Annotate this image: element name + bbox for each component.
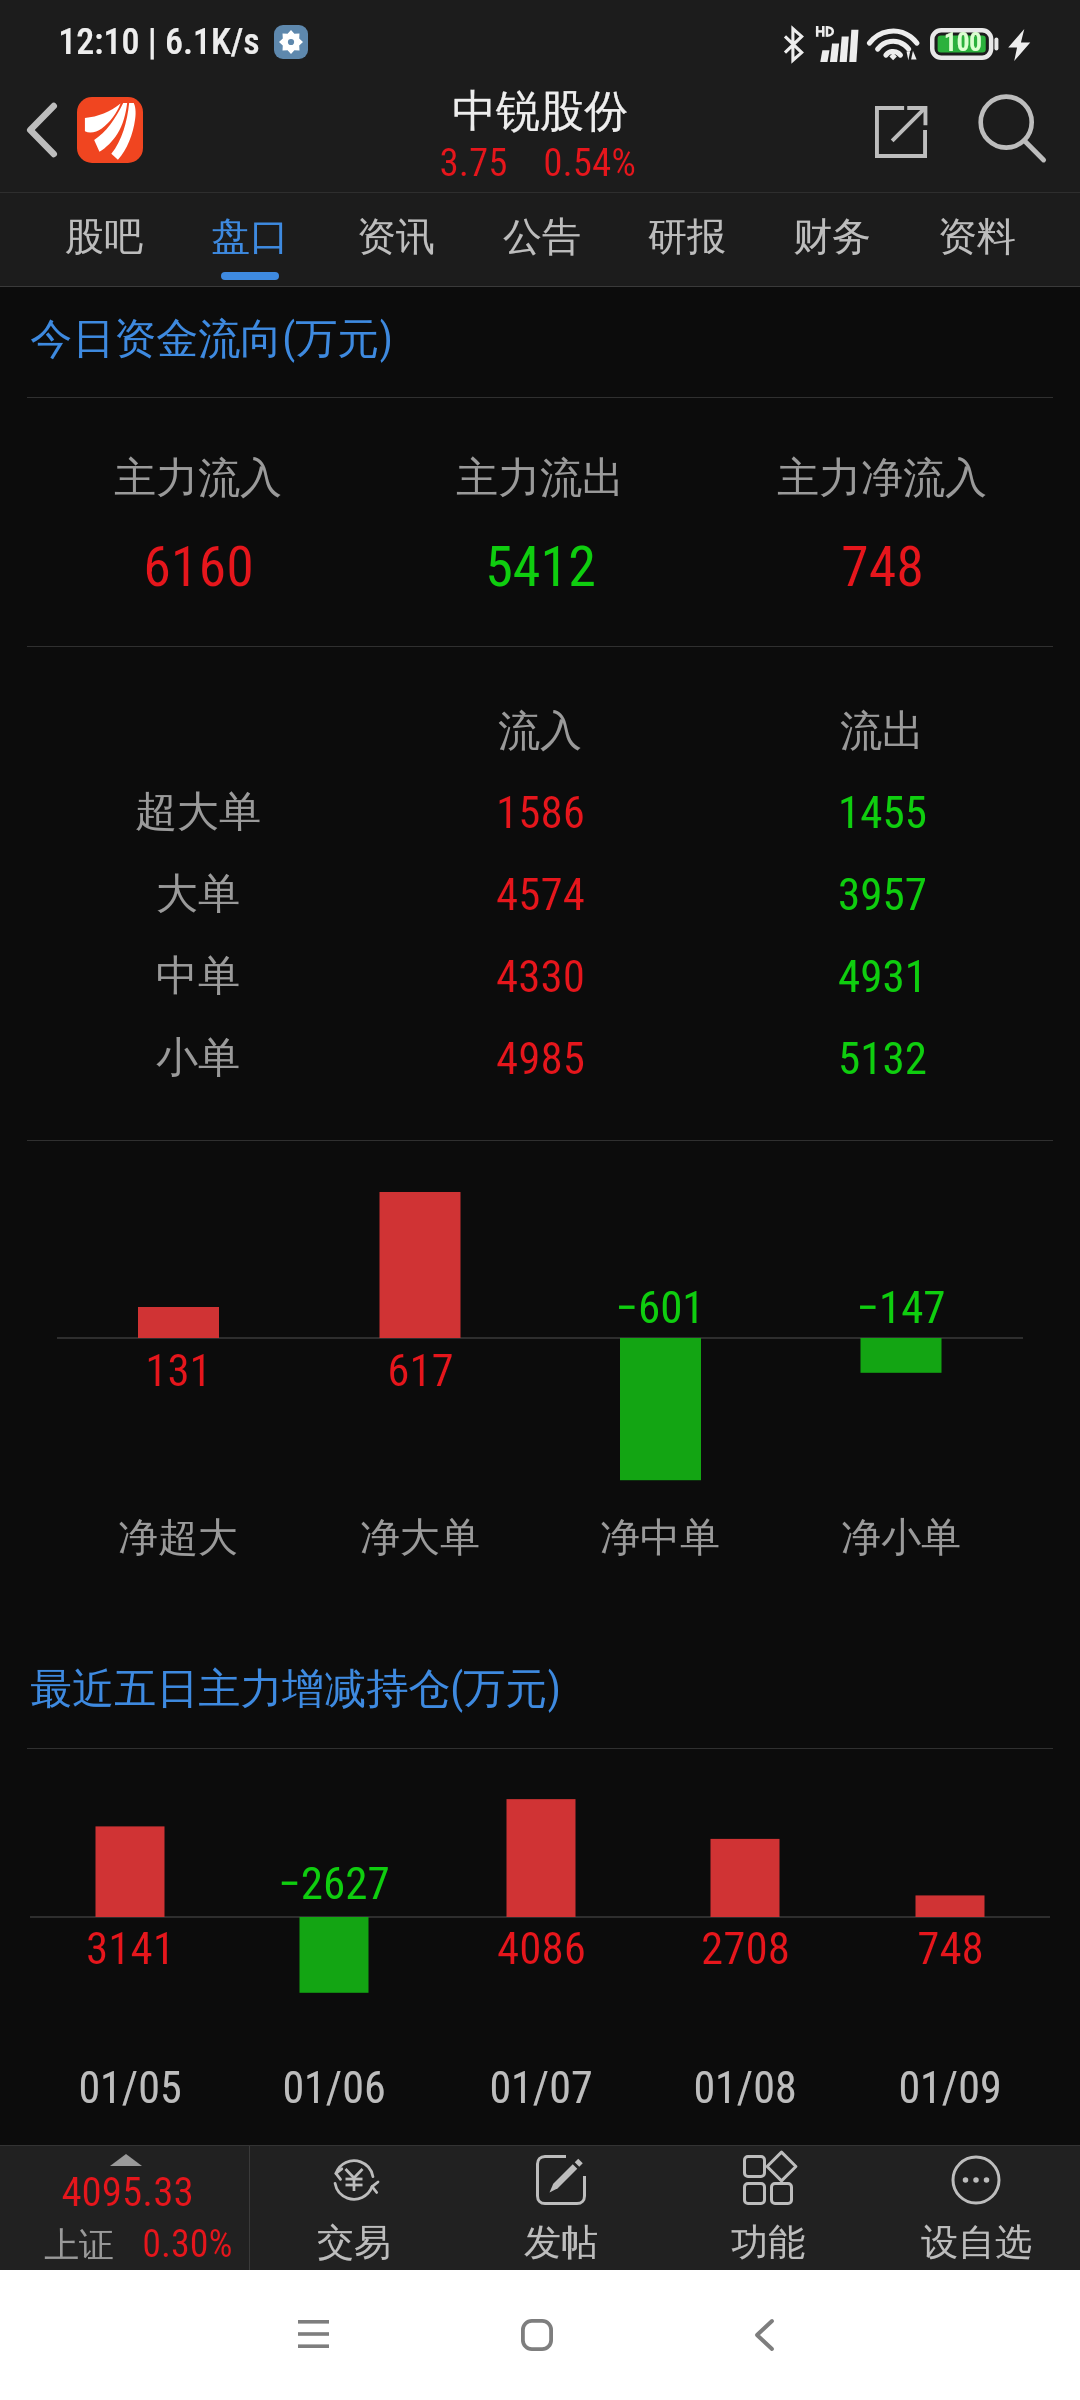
staticText: 流入: [498, 705, 582, 758]
staticText: −2627: [278, 1857, 390, 1910]
staticText: 净超大: [118, 1512, 238, 1562]
staticText: −147: [856, 1281, 946, 1334]
button[interactable]: Eastmoney: [77, 97, 143, 163]
staticText: 小单: [156, 1032, 240, 1085]
staticText: 超大单: [135, 786, 261, 839]
staticText: 净中单: [600, 1512, 720, 1562]
staticText: 交易: [317, 2219, 391, 2266]
button[interactable]: 发帖: [457, 2146, 664, 2270]
staticText: 股吧: [65, 212, 143, 261]
staticText: 131: [145, 1344, 212, 1397]
staticText: 12:10 | 6.1K/s: [58, 21, 260, 63]
staticText: 最近五日主力增减持仓(万元): [30, 1663, 561, 1716]
staticText: 3957: [838, 868, 927, 921]
staticText: 4931: [838, 950, 927, 1003]
staticText: 主力流出: [456, 452, 624, 505]
staticText: 748: [917, 1922, 984, 1975]
staticText: 中锐股份: [452, 84, 628, 139]
staticText: 01/08: [693, 2062, 797, 2114]
staticText: 公告: [503, 212, 581, 261]
staticText: 4095.33: [61, 2168, 194, 2214]
staticText: 4985: [496, 1032, 585, 1085]
staticText: 盘口: [211, 212, 289, 261]
staticText: 主力流入: [114, 452, 282, 505]
staticText: 流出: [840, 705, 924, 758]
staticText: 今日资金流向(万元): [30, 313, 393, 366]
button[interactable]: 交易: [250, 2146, 457, 2270]
staticText: 5132: [838, 1032, 927, 1085]
staticText: 4330: [496, 950, 585, 1003]
button[interactable]: Share: [861, 92, 941, 172]
staticText: 功能: [731, 2219, 805, 2266]
staticText: 净小单: [841, 1512, 961, 1562]
staticText: 3.75: [439, 140, 508, 186]
staticText: 发帖: [524, 2219, 598, 2266]
staticText: 0.30%: [142, 2222, 233, 2267]
button[interactable]: 研报: [614, 200, 759, 286]
staticText: 资料: [938, 212, 1016, 261]
staticText: 01/05: [78, 2062, 182, 2114]
staticText: 748: [841, 534, 924, 600]
staticText: 主力净流入: [777, 452, 987, 505]
staticText: 1586: [496, 786, 585, 839]
button[interactable]: 功能: [664, 2146, 872, 2270]
button[interactable]: 4095.33: [0, 2146, 250, 2270]
button[interactable]: 公告: [469, 200, 614, 286]
button[interactable]: Search: [973, 90, 1053, 170]
staticText: 6160: [143, 534, 254, 600]
staticText: 617: [387, 1344, 454, 1397]
staticText: −601: [615, 1281, 705, 1334]
staticText: 100: [944, 28, 982, 57]
staticText: 1455: [838, 786, 927, 839]
button[interactable]: 资料: [904, 200, 1049, 286]
staticText: 2708: [701, 1922, 790, 1975]
button[interactable]: Back: [4, 92, 80, 168]
button[interactable]: 盘口: [177, 200, 323, 286]
button[interactable]: 资讯: [323, 200, 469, 286]
staticText: 中单: [156, 950, 240, 1003]
staticText: 上证: [44, 2223, 114, 2267]
staticText: 01/06: [282, 2062, 386, 2114]
staticText: 01/09: [898, 2062, 1002, 2114]
staticText: 研报: [648, 212, 726, 261]
staticText: 净大单: [360, 1512, 480, 1562]
staticText: 资讯: [357, 212, 435, 261]
staticText: 01/07: [489, 2062, 593, 2114]
button[interactable]: 股吧: [31, 200, 177, 286]
staticText: 5412: [485, 534, 596, 600]
staticText: 设自选: [921, 2219, 1032, 2266]
staticText: 3141: [86, 1922, 175, 1975]
staticText: 4574: [496, 868, 585, 921]
staticText: 财务: [793, 212, 871, 261]
button[interactable]: 财务: [759, 200, 904, 286]
staticText: 0.54%: [543, 140, 636, 186]
staticText: 4086: [497, 1922, 586, 1975]
staticText: 大单: [156, 868, 240, 921]
button[interactable]: 设自选: [872, 2146, 1080, 2270]
